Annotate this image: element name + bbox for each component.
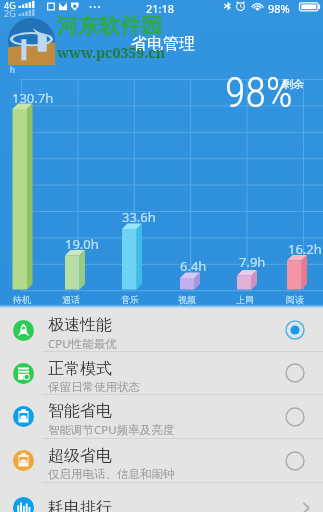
button[interactable]: 智能省电 — [0, 395, 323, 438]
staticText: 4G — [4, 0, 16, 11]
staticText: 33.6h — [122, 208, 156, 226]
button[interactable]: 极速性能 — [0, 309, 323, 351]
other: 智能省电 — [282, 404, 308, 430]
staticText: 超级省电 — [48, 446, 112, 466]
staticText: 河东软件园 — [57, 13, 162, 39]
staticText: 98% — [268, 1, 290, 16]
other: 耗电排行 — [296, 498, 316, 512]
staticText: 音乐 — [121, 294, 139, 305]
staticText: CPU性能最优 — [48, 336, 117, 352]
staticText: 2G — [4, 7, 16, 19]
staticText: 智能省电 — [48, 401, 112, 421]
staticText: 剩余 — [282, 77, 304, 91]
staticText: 正常模式 — [48, 359, 112, 379]
staticText: 7.9h — [239, 253, 266, 271]
other: 超级省电 — [282, 448, 308, 474]
staticText: 上网 — [236, 294, 254, 305]
staticText: 21:18 — [146, 1, 175, 16]
staticText: 智能调节CPU频率及亮度 — [48, 422, 175, 438]
other: 正常模式 — [282, 360, 308, 386]
button[interactable]: 正常模式 — [0, 352, 323, 394]
staticText: 极速性能 — [48, 315, 112, 335]
staticText: 130.7h — [12, 89, 54, 107]
button[interactable]: 耗电排行 — [0, 493, 323, 512]
staticText: 通话 — [62, 294, 80, 305]
staticText: www.pc0359.cn — [57, 43, 165, 62]
button[interactable]: 超级省电 — [0, 439, 323, 482]
staticText: 16.2h — [288, 240, 322, 258]
staticText: 耗电排行 — [48, 498, 296, 512]
staticText: 仅启用电话、信息和闹钟 — [48, 467, 175, 481]
staticText: h — [10, 64, 15, 75]
staticText: 98% — [225, 68, 293, 117]
staticText: 视频 — [178, 294, 196, 305]
staticText: 省电管理 — [131, 34, 195, 54]
staticText: 待机 — [13, 294, 31, 305]
staticText: 6.4h — [180, 257, 207, 275]
other: 极速性能 — [282, 317, 308, 343]
staticText: 保留日常使用状态 — [48, 380, 140, 394]
staticText: 阅读 — [286, 294, 304, 305]
staticText: 19.0h — [65, 235, 99, 253]
